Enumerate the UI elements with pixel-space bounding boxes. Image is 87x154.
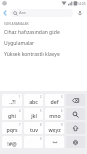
staticText: 4 — [19, 109, 21, 113]
staticText: Uygulamalar — [4, 40, 35, 47]
staticText: SON ARAMALAR — [4, 22, 29, 26]
staticText: abc — [29, 98, 38, 105]
button[interactable]: Uygulamalar — [0, 38, 87, 49]
staticText: .,?! — [9, 98, 16, 105]
button[interactable]: .,?! — [2, 94, 22, 106]
staticText: wxyz — [48, 126, 61, 133]
button[interactable]: tuv — [24, 122, 43, 134]
staticText: jkl — [31, 112, 37, 119]
staticText: 5 — [40, 109, 42, 113]
staticText: 6 — [61, 109, 63, 113]
button[interactable]: pqrs — [2, 122, 22, 134]
staticText: pqrs — [6, 126, 18, 133]
button[interactable]: Backspace — [66, 94, 85, 106]
button[interactable]: Yüksek kontrastlı klavye — [0, 49, 87, 60]
staticText: 7 — [19, 123, 21, 127]
staticText: 3 — [61, 95, 63, 99]
button[interactable]: Back — [0, 7, 10, 18]
staticText: 14:05 — [77, 1, 86, 6]
staticText: mno — [49, 112, 61, 119]
button[interactable]: 0 — [24, 136, 43, 148]
button[interactable]: wxyz — [45, 122, 64, 134]
staticText: 1 — [19, 95, 21, 99]
staticText: 0 — [40, 137, 42, 141]
button[interactable]: !#@ — [2, 136, 22, 148]
button[interactable]: ghi — [2, 108, 22, 120]
button[interactable]: Space — [45, 136, 64, 148]
button[interactable]: Emoji — [66, 136, 85, 148]
staticText: 8 — [40, 123, 42, 127]
staticText: ghi — [8, 112, 16, 119]
button[interactable]: mno — [45, 108, 64, 120]
button[interactable]: Cihaz hafızasından gizle — [0, 27, 87, 38]
button[interactable]: Shift — [66, 122, 85, 134]
staticText: Ara — [19, 10, 26, 16]
staticText: def — [50, 98, 59, 105]
button[interactable]: jkl — [24, 108, 43, 120]
button[interactable]: abc — [24, 94, 43, 106]
staticText: Yüksek kontrastlı klavye — [4, 51, 60, 58]
button[interactable]: def — [45, 94, 64, 106]
staticText: !#@ — [7, 140, 17, 147]
staticText: 9 — [61, 123, 63, 127]
staticText: Cihaz hafızasından gizle — [4, 29, 60, 36]
button[interactable]: Ara — [10, 9, 73, 17]
button[interactable]: Voice search — [73, 7, 87, 18]
staticText: tuv — [30, 126, 38, 133]
staticText: 2 — [40, 95, 42, 99]
button[interactable]: Search — [66, 108, 85, 120]
